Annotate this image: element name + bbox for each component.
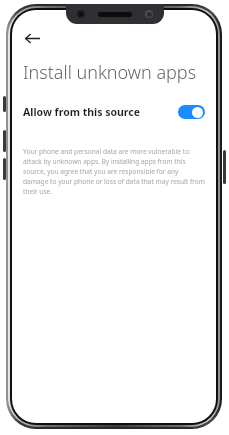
staticText: Install unknown apps	[23, 60, 197, 85]
button[interactable]: Allow from this source toggle	[178, 105, 205, 119]
button[interactable]: Allow from this source	[12, 101, 216, 123]
staticText: Allow from this source	[23, 105, 141, 119]
staticText: Your phone and personal data are more vu…	[23, 147, 205, 196]
button[interactable]: Back	[18, 24, 46, 52]
